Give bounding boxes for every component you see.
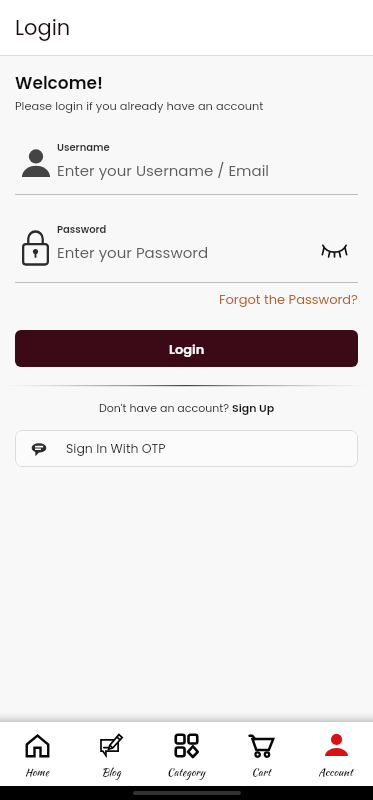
button[interactable]: Cart	[223, 722, 298, 780]
staticText: Welcome!	[15, 71, 104, 95]
staticText: Sign In With OTP	[66, 440, 166, 457]
staticText: Password	[57, 222, 107, 236]
staticText: Username	[57, 140, 110, 154]
button[interactable]: Home	[0, 722, 74, 780]
button[interactable]: Blog	[74, 722, 148, 780]
staticText: Home	[25, 765, 49, 780]
button[interactable]: Sign Up	[232, 400, 275, 415]
staticText: Please login if you already have an acco…	[15, 98, 264, 114]
staticText: Account	[318, 765, 353, 780]
staticText: Login	[15, 13, 71, 42]
staticText: Don't have an account?	[99, 400, 232, 415]
staticText: Forgot the Password?	[219, 290, 358, 308]
staticText: Enter your Password	[57, 242, 209, 263]
staticText: Login	[169, 340, 205, 358]
button[interactable]: Sign In With OTP	[15, 430, 358, 467]
staticText: Cart	[251, 765, 271, 780]
button[interactable]: Show password	[311, 234, 358, 267]
button[interactable]: Forgot the Password?	[219, 290, 358, 308]
staticText: Sign Up	[232, 400, 275, 415]
button[interactable]: Category	[148, 722, 223, 780]
staticText: Blog	[101, 765, 121, 780]
staticText: Enter your Username / Email	[57, 160, 270, 181]
button[interactable]: Login	[15, 330, 358, 367]
button[interactable]: Account	[298, 722, 373, 780]
staticText: Category	[167, 765, 205, 780]
